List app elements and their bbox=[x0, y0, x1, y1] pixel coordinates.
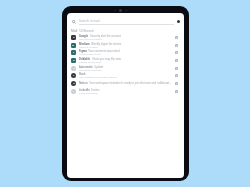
staticText: Google bbox=[79, 34, 89, 38]
button[interactable]: G bbox=[67, 33, 184, 41]
button[interactable]: L bbox=[67, 87, 184, 95]
staticText: Weekly digest for stories bbox=[90, 42, 122, 46]
button[interactable]: D bbox=[67, 56, 184, 64]
staticText: Catch up on latest bbox=[79, 46, 98, 49]
staticText: Shots you may like now bbox=[91, 57, 121, 61]
staticText: New sign-in on device bbox=[79, 38, 102, 41]
staticText: A bbox=[73, 67, 75, 70]
staticText: Your workspace invitation is ready to jo… bbox=[88, 81, 172, 85]
button[interactable]: M bbox=[67, 41, 184, 49]
button[interactable]: Star bbox=[174, 50, 179, 55]
staticText: Your comment was noted bbox=[87, 49, 120, 53]
staticText: Automattic bbox=[79, 65, 93, 69]
staticText: Curated for you today bbox=[79, 61, 102, 64]
button[interactable]: Search in mail bbox=[67, 15, 184, 28]
staticText: New message in the general channel bbox=[79, 76, 117, 79]
staticText: Design review thread bbox=[79, 53, 101, 56]
staticText: Invites bbox=[90, 88, 100, 92]
staticText: Figma bbox=[79, 49, 87, 53]
staticText: Notion bbox=[79, 81, 88, 85]
button[interactable]: Star bbox=[174, 73, 179, 78]
staticText: D bbox=[73, 59, 75, 62]
staticText: L bbox=[73, 90, 75, 93]
staticText: Security alert for account bbox=[89, 34, 121, 38]
staticText: S bbox=[73, 74, 75, 77]
button[interactable]: Star bbox=[174, 66, 179, 71]
staticText: N bbox=[73, 82, 75, 85]
button[interactable]: Star bbox=[174, 89, 179, 94]
button[interactable]: A bbox=[67, 64, 184, 72]
staticText: Update bbox=[93, 65, 104, 69]
staticText: Slack bbox=[79, 72, 86, 76]
staticText: M bbox=[72, 44, 75, 47]
button[interactable]: Star bbox=[174, 58, 179, 63]
button[interactable]: F bbox=[67, 49, 184, 56]
staticText: F bbox=[73, 51, 75, 54]
staticText: Search in mail bbox=[79, 19, 100, 23]
button[interactable]: Star bbox=[174, 81, 179, 86]
staticText: Mail bbox=[71, 29, 78, 33]
button[interactable]: Star bbox=[174, 35, 179, 40]
staticText: 3 new connections bbox=[79, 92, 99, 95]
staticText: Dribbble bbox=[79, 57, 91, 61]
button[interactable]: S bbox=[67, 72, 184, 79]
staticText: Medium bbox=[79, 42, 90, 46]
button[interactable]: Star bbox=[174, 43, 179, 48]
staticText: G bbox=[73, 36, 75, 39]
staticText: LinkedIn bbox=[79, 88, 90, 92]
button[interactable]: N bbox=[67, 79, 184, 87]
staticText: 12 Recent bbox=[79, 29, 94, 33]
staticText: Your weekly summary bbox=[79, 69, 102, 72]
